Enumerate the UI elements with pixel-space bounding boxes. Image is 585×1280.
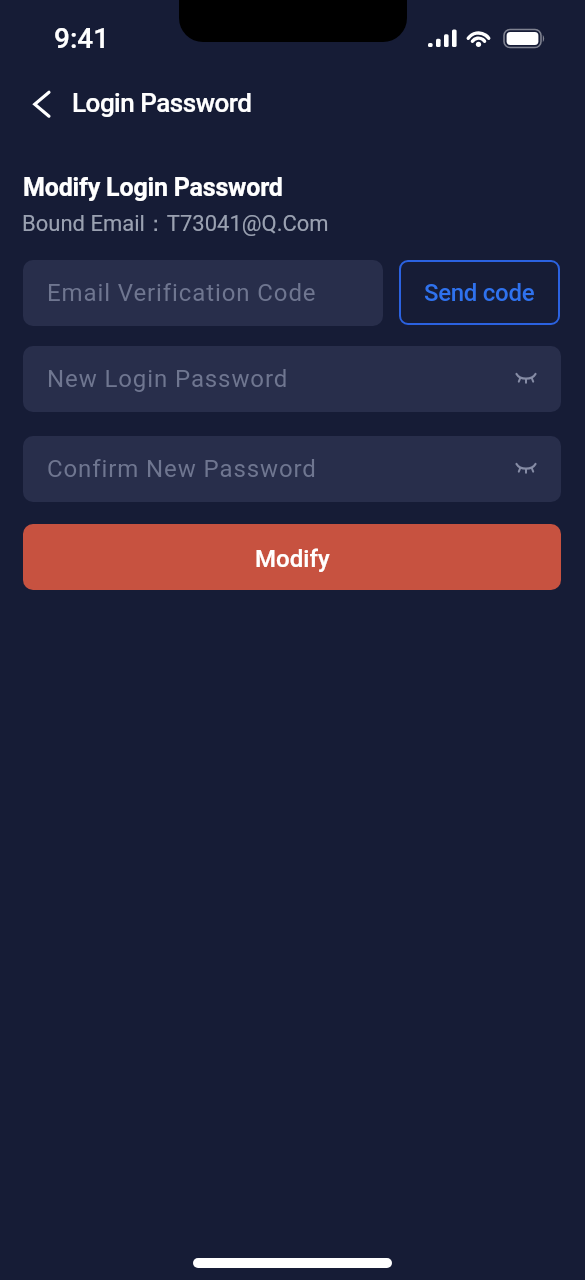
button[interactable]: Send code bbox=[399, 260, 560, 325]
staticText: Send code bbox=[424, 279, 535, 307]
button[interactable]: Email Verification Code bbox=[23, 260, 383, 326]
button[interactable]: Modify bbox=[23, 524, 561, 590]
staticText: Login Password bbox=[72, 88, 252, 118]
button[interactable]: Confirm New Password bbox=[23, 436, 561, 502]
button[interactable]: New Login Password bbox=[23, 346, 561, 412]
staticText: Bound Email：T73041@Q.Com bbox=[22, 210, 329, 238]
staticText: Confirm New Password bbox=[47, 455, 317, 483]
staticText: New Login Password bbox=[47, 365, 289, 393]
staticText: Modify bbox=[255, 545, 330, 573]
button[interactable] bbox=[18, 84, 60, 126]
staticText: Email Verification Code bbox=[47, 279, 317, 307]
staticText: 9:41 bbox=[54, 22, 110, 55]
staticText: Modify Login Password bbox=[23, 173, 283, 202]
